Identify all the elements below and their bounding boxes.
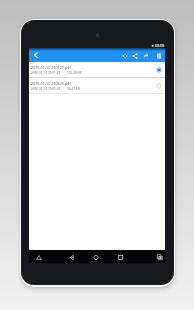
- button[interactable]: [80, 250, 98, 263]
- button[interactable]: [29, 250, 49, 263]
- button[interactable]: [130, 49, 140, 63]
- button[interactable]: 2016-01-10 250127.pdf: [29, 62, 165, 77]
- button[interactable]: [149, 250, 165, 263]
- staticText: 2016-01-10 250127.pdf: [31, 65, 71, 70]
- button[interactable]: [29, 48, 42, 62]
- button[interactable]: [153, 49, 164, 63]
- button[interactable]: [98, 250, 116, 263]
- staticText: 2016-01-10 250535.pdf: [31, 81, 71, 86]
- button[interactable]: [152, 62, 165, 77]
- button[interactable]: [152, 78, 165, 93]
- staticText: 125.20 KB: [67, 71, 82, 75]
- button[interactable]: 2016-01-10 250535.pdf: [29, 78, 165, 93]
- staticText: 2016-01-10 25:05:35: [31, 87, 61, 91]
- staticText: 09:05: [155, 43, 165, 48]
- staticText: 96.47 KB: [67, 87, 80, 91]
- staticText: 2016-01-10 25:01:27: [31, 71, 61, 75]
- button[interactable]: [62, 250, 80, 263]
- button[interactable]: [141, 49, 151, 63]
- button[interactable]: [120, 49, 130, 63]
